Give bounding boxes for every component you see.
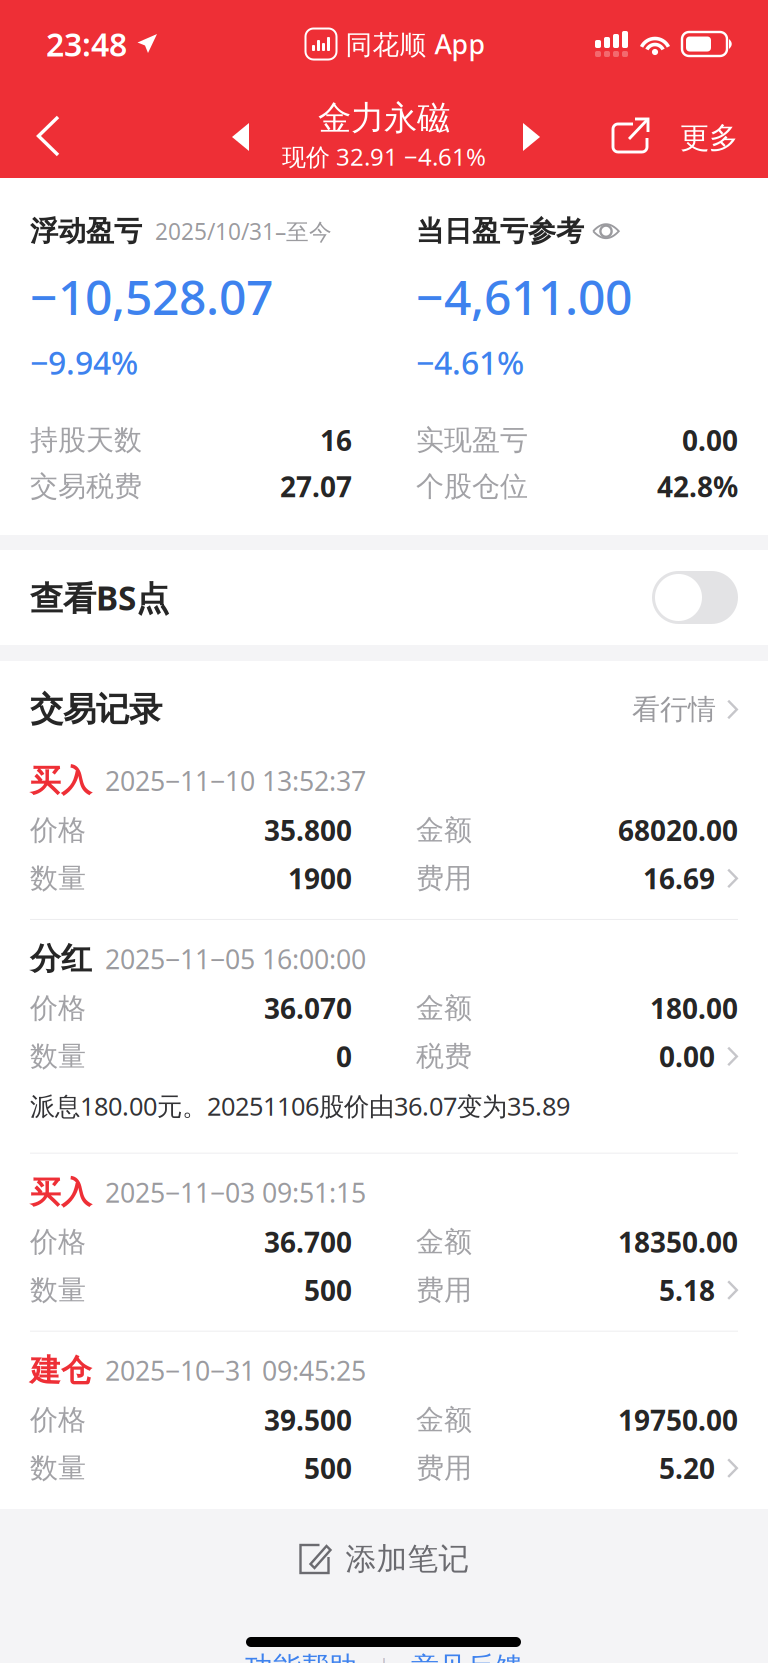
staticText: 更多 (680, 120, 738, 156)
staticText: 数量 (30, 1039, 86, 1074)
staticText: 金额 (416, 1403, 472, 1437)
staticText: 分红 (30, 940, 92, 978)
staticText: 36.070 (264, 990, 352, 1027)
button[interactable]: 买入 (0, 1154, 768, 1331)
staticText: 实现盈亏 (416, 423, 528, 457)
staticText: 费用 (416, 1451, 472, 1485)
staticText: 0 (336, 1038, 352, 1075)
staticText: 16.69 (643, 860, 715, 897)
button[interactable]: Next stock (507, 97, 556, 177)
staticText: 现价 32.91 −4.61% (282, 140, 486, 172)
staticText: 查看BS点 (30, 575, 169, 620)
staticText: 持股天数 (30, 423, 142, 457)
staticText: 费用 (416, 861, 472, 896)
staticText: 价格 (30, 991, 86, 1025)
button[interactable]: 查看BS点 (0, 550, 768, 645)
staticText: 16 (320, 422, 352, 459)
staticText: 2025−11−05 16:00:00 (105, 941, 366, 976)
staticText: 浮动盈亏 (30, 214, 142, 248)
staticText: 42.8% (657, 468, 738, 505)
staticText: 价格 (30, 1225, 86, 1259)
staticText: 5.18 (659, 1271, 715, 1309)
staticText: 2025−11−10 13:52:37 (105, 763, 366, 798)
button[interactable]: 意见反馈 (411, 1650, 523, 1663)
staticText: 税费 (416, 1039, 472, 1074)
staticText: 买入 (30, 762, 92, 800)
staticText: 买入 (30, 1174, 92, 1211)
staticText: 19750.00 (618, 1401, 738, 1438)
button[interactable]: 更多 (666, 92, 752, 184)
staticText: 500 (304, 1449, 352, 1487)
staticText: 2025−10−31 09:45:25 (105, 1353, 366, 1388)
staticText: 2025−11−03 09:51:15 (105, 1175, 366, 1210)
staticText: 金额 (416, 813, 472, 847)
staticText: 数量 (30, 1451, 86, 1485)
staticText: 功能帮助 (245, 1650, 357, 1663)
staticText: 68020.00 (618, 812, 738, 849)
staticText: 交易记录 (30, 689, 162, 730)
staticText: 180.00 (650, 990, 738, 1027)
button[interactable]: 买入 (0, 742, 768, 919)
staticText: 个股仓位 (416, 469, 528, 504)
button[interactable]: 交易记录 (0, 661, 768, 742)
staticText: 36.700 (264, 1223, 352, 1260)
staticText: 派息180.00元。20251106股价由36.07变为35.89 (30, 1089, 570, 1123)
staticText: 金额 (416, 991, 472, 1025)
staticText: | (377, 1650, 391, 1663)
staticText: −4.61% (416, 341, 524, 384)
staticText: 27.07 (280, 468, 352, 505)
button[interactable]: Previous stock (216, 97, 265, 177)
staticText: 费用 (416, 1273, 472, 1307)
staticText: 看行情 (632, 692, 716, 727)
button[interactable]: Back (18, 93, 79, 179)
staticText: 建仓 (30, 1352, 92, 1389)
staticText: 交易税费 (30, 469, 142, 504)
staticText: 2025/10/31–至今 (155, 216, 332, 246)
staticText: −10,528.07 (30, 264, 273, 328)
staticText: 添加笔记 (345, 1540, 469, 1578)
staticText: 数量 (30, 861, 86, 896)
staticText: 0.00 (682, 422, 738, 459)
staticText: 金额 (416, 1225, 472, 1259)
staticText: 意见反馈 (411, 1650, 523, 1663)
staticText: 0.00 (659, 1038, 715, 1075)
staticText: 金力永磁 (318, 98, 450, 138)
button[interactable]: Share (600, 93, 661, 179)
staticText: 1900 (288, 860, 352, 897)
staticText: 数量 (30, 1273, 86, 1307)
staticText: 当日盈亏参考 (416, 214, 584, 248)
staticText: 18350.00 (618, 1223, 738, 1260)
button[interactable]: 功能帮助 (245, 1650, 357, 1663)
button[interactable]: 分红 (0, 920, 768, 1153)
staticText: 35.800 (264, 812, 352, 849)
staticText: 同花顺 App (345, 26, 485, 62)
staticText: 23:48 (46, 23, 127, 65)
staticText: 价格 (30, 1403, 86, 1437)
staticText: 价格 (30, 813, 86, 847)
staticText: −4,611.00 (416, 264, 632, 328)
button[interactable]: 添加笔记 (0, 1520, 768, 1598)
staticText: 5.20 (659, 1449, 715, 1487)
staticText: 39.500 (264, 1401, 352, 1438)
staticText: −9.94% (30, 341, 138, 384)
staticText: 500 (304, 1271, 352, 1309)
button[interactable]: 建仓 (0, 1332, 768, 1509)
